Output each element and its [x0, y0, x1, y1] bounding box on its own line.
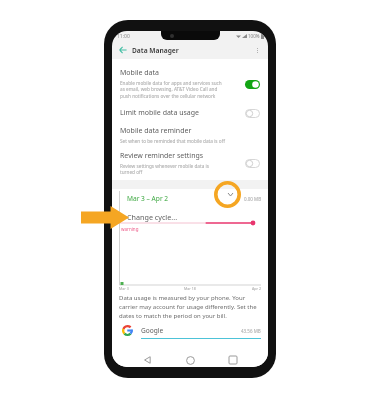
staticText: Data usage is measured by your phone. Yo…	[119, 294, 261, 319]
button[interactable]: Mobile data	[112, 65, 268, 103]
staticText: Mar 3 – Apr 2	[127, 194, 169, 203]
button[interactable]: Limit mobile data usage	[112, 103, 268, 123]
staticText: Data Manager	[132, 46, 179, 55]
button[interactable]: More options	[251, 44, 263, 56]
button[interactable]: Turn on	[245, 109, 260, 118]
button[interactable]: Mobile data reminder	[112, 123, 268, 147]
staticText: 0.00 MB	[244, 196, 262, 202]
button[interactable]: Turn off	[245, 80, 260, 89]
staticText: Review settings whenever mobile data is …	[120, 163, 224, 176]
staticText: Mar 3	[119, 286, 129, 291]
staticText: Apr 2	[252, 286, 261, 291]
staticText: Change cycle...	[127, 212, 178, 222]
staticText: Mar 18	[184, 286, 196, 291]
button[interactable]: Change cycle	[224, 188, 237, 201]
staticText: Mobile data	[120, 68, 159, 78]
staticText: 100%	[248, 33, 260, 39]
button[interactable]: Review reminder settings	[112, 147, 268, 180]
staticText: Limit mobile data usage	[120, 108, 200, 118]
staticText: Enable mobile data for apps and services…	[120, 80, 224, 100]
staticText: 43.56 MB	[241, 328, 261, 334]
staticText: Review reminder settings	[120, 151, 204, 161]
staticText: warning	[121, 226, 139, 232]
staticText: 11:00	[117, 33, 130, 40]
staticText: Mobile data reminder	[120, 126, 192, 136]
staticText: Set when to be reminded that mobile data…	[120, 138, 260, 144]
button[interactable]: Google	[119, 325, 261, 336]
button[interactable]: Back	[117, 44, 129, 56]
staticText: Google	[141, 326, 164, 335]
button[interactable]: Turn on	[245, 159, 260, 168]
button[interactable]: Back	[139, 353, 155, 367]
button[interactable]: Recent apps	[225, 353, 241, 367]
button[interactable]: Home	[182, 353, 198, 367]
